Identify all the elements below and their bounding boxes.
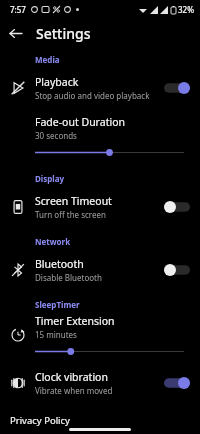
staticText: 32% — [178, 4, 194, 15]
button[interactable]: Fade-out Duration — [0, 115, 200, 157]
staticText: Playback — [35, 75, 79, 89]
button[interactable]: Clock vibration — [0, 366, 200, 400]
staticText: Vibrate when moved — [35, 385, 113, 396]
staticText: Disable Bluetooth — [35, 272, 102, 283]
button[interactable]: Bluetooth — [0, 253, 200, 287]
button[interactable]: Screen Timeout — [0, 190, 200, 224]
staticText: 15 minutes — [35, 329, 77, 340]
staticText: Fade-out Duration — [35, 115, 125, 129]
button[interactable]: Privacy Policy — [0, 412, 200, 428]
button[interactable]: Playback — [0, 71, 200, 105]
staticText: Bluetooth — [35, 257, 84, 271]
staticText: Turn off the screen — [35, 209, 106, 220]
button[interactable]: Timer Extension — [0, 314, 200, 356]
button[interactable]: Back — [0, 18, 30, 48]
staticText: Privacy Policy — [10, 414, 70, 427]
staticText: Media — [35, 54, 60, 65]
staticText: Network — [35, 236, 71, 247]
staticText: 30 seconds — [35, 130, 77, 141]
staticText: Display — [35, 173, 65, 184]
staticText: SleepTimer — [35, 299, 80, 310]
staticText: Timer Extension — [35, 314, 115, 328]
staticText: Stop audio and video playback — [35, 90, 150, 101]
staticText: Clock vibration — [35, 370, 108, 384]
staticText: Screen Timeout — [35, 194, 112, 208]
staticText: Settings — [36, 24, 91, 43]
staticText: 7:57 — [10, 4, 26, 15]
